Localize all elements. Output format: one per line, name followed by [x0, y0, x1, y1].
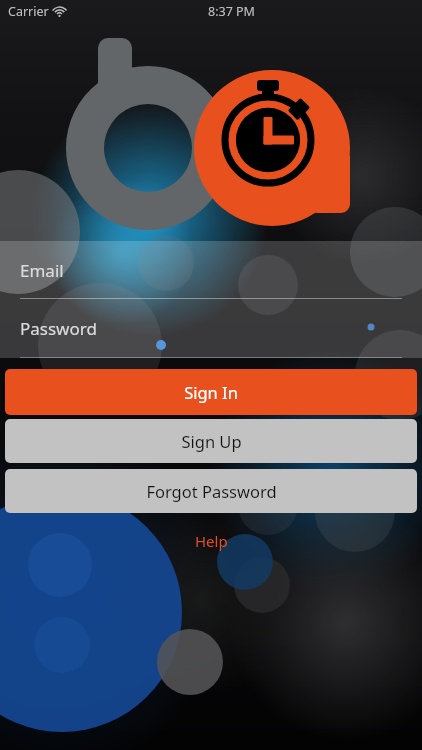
staticText: Help: [195, 531, 228, 551]
staticText: Email: [20, 259, 64, 282]
staticText: Sign In: [184, 381, 238, 403]
button[interactable]: Help: [0, 527, 422, 555]
button[interactable]: Email: [0, 241, 422, 299]
button[interactable]: Password: [0, 299, 422, 358]
button[interactable]: Sign Up: [5, 419, 417, 463]
staticText: Sign Up: [181, 430, 242, 452]
button[interactable]: Sign In: [5, 369, 417, 415]
staticText: 8:37 PM: [208, 3, 255, 20]
staticText: Forgot Password: [146, 480, 277, 502]
staticText: Password: [20, 317, 97, 340]
staticText: Carrier: [8, 3, 49, 20]
button[interactable]: Forgot Password: [5, 469, 417, 513]
